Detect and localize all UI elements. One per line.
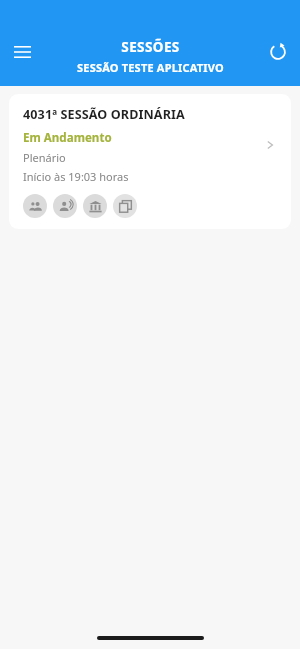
button[interactable]: 4031ª SESSÃO ORDINÁRIA xyxy=(9,94,291,229)
button[interactable]: Open session details xyxy=(259,134,281,156)
staticText: SESSÃO TESTE APLICATIVO xyxy=(77,60,224,75)
staticText: Plenário xyxy=(23,150,66,165)
button[interactable]: Refresh xyxy=(256,30,300,74)
staticText: 4031ª SESSÃO ORDINÁRIA xyxy=(23,106,185,123)
button[interactable]: Plenary xyxy=(83,194,107,218)
staticText: SESSÕES xyxy=(121,38,180,56)
staticText: Início às 19:03 horas xyxy=(23,169,129,184)
button[interactable]: Documents xyxy=(113,194,137,218)
button[interactable]: Speakers xyxy=(53,194,77,218)
button[interactable]: Open navigation menu xyxy=(0,30,44,74)
button[interactable]: Participants xyxy=(23,194,47,218)
staticText: Em Andamento xyxy=(23,130,112,146)
